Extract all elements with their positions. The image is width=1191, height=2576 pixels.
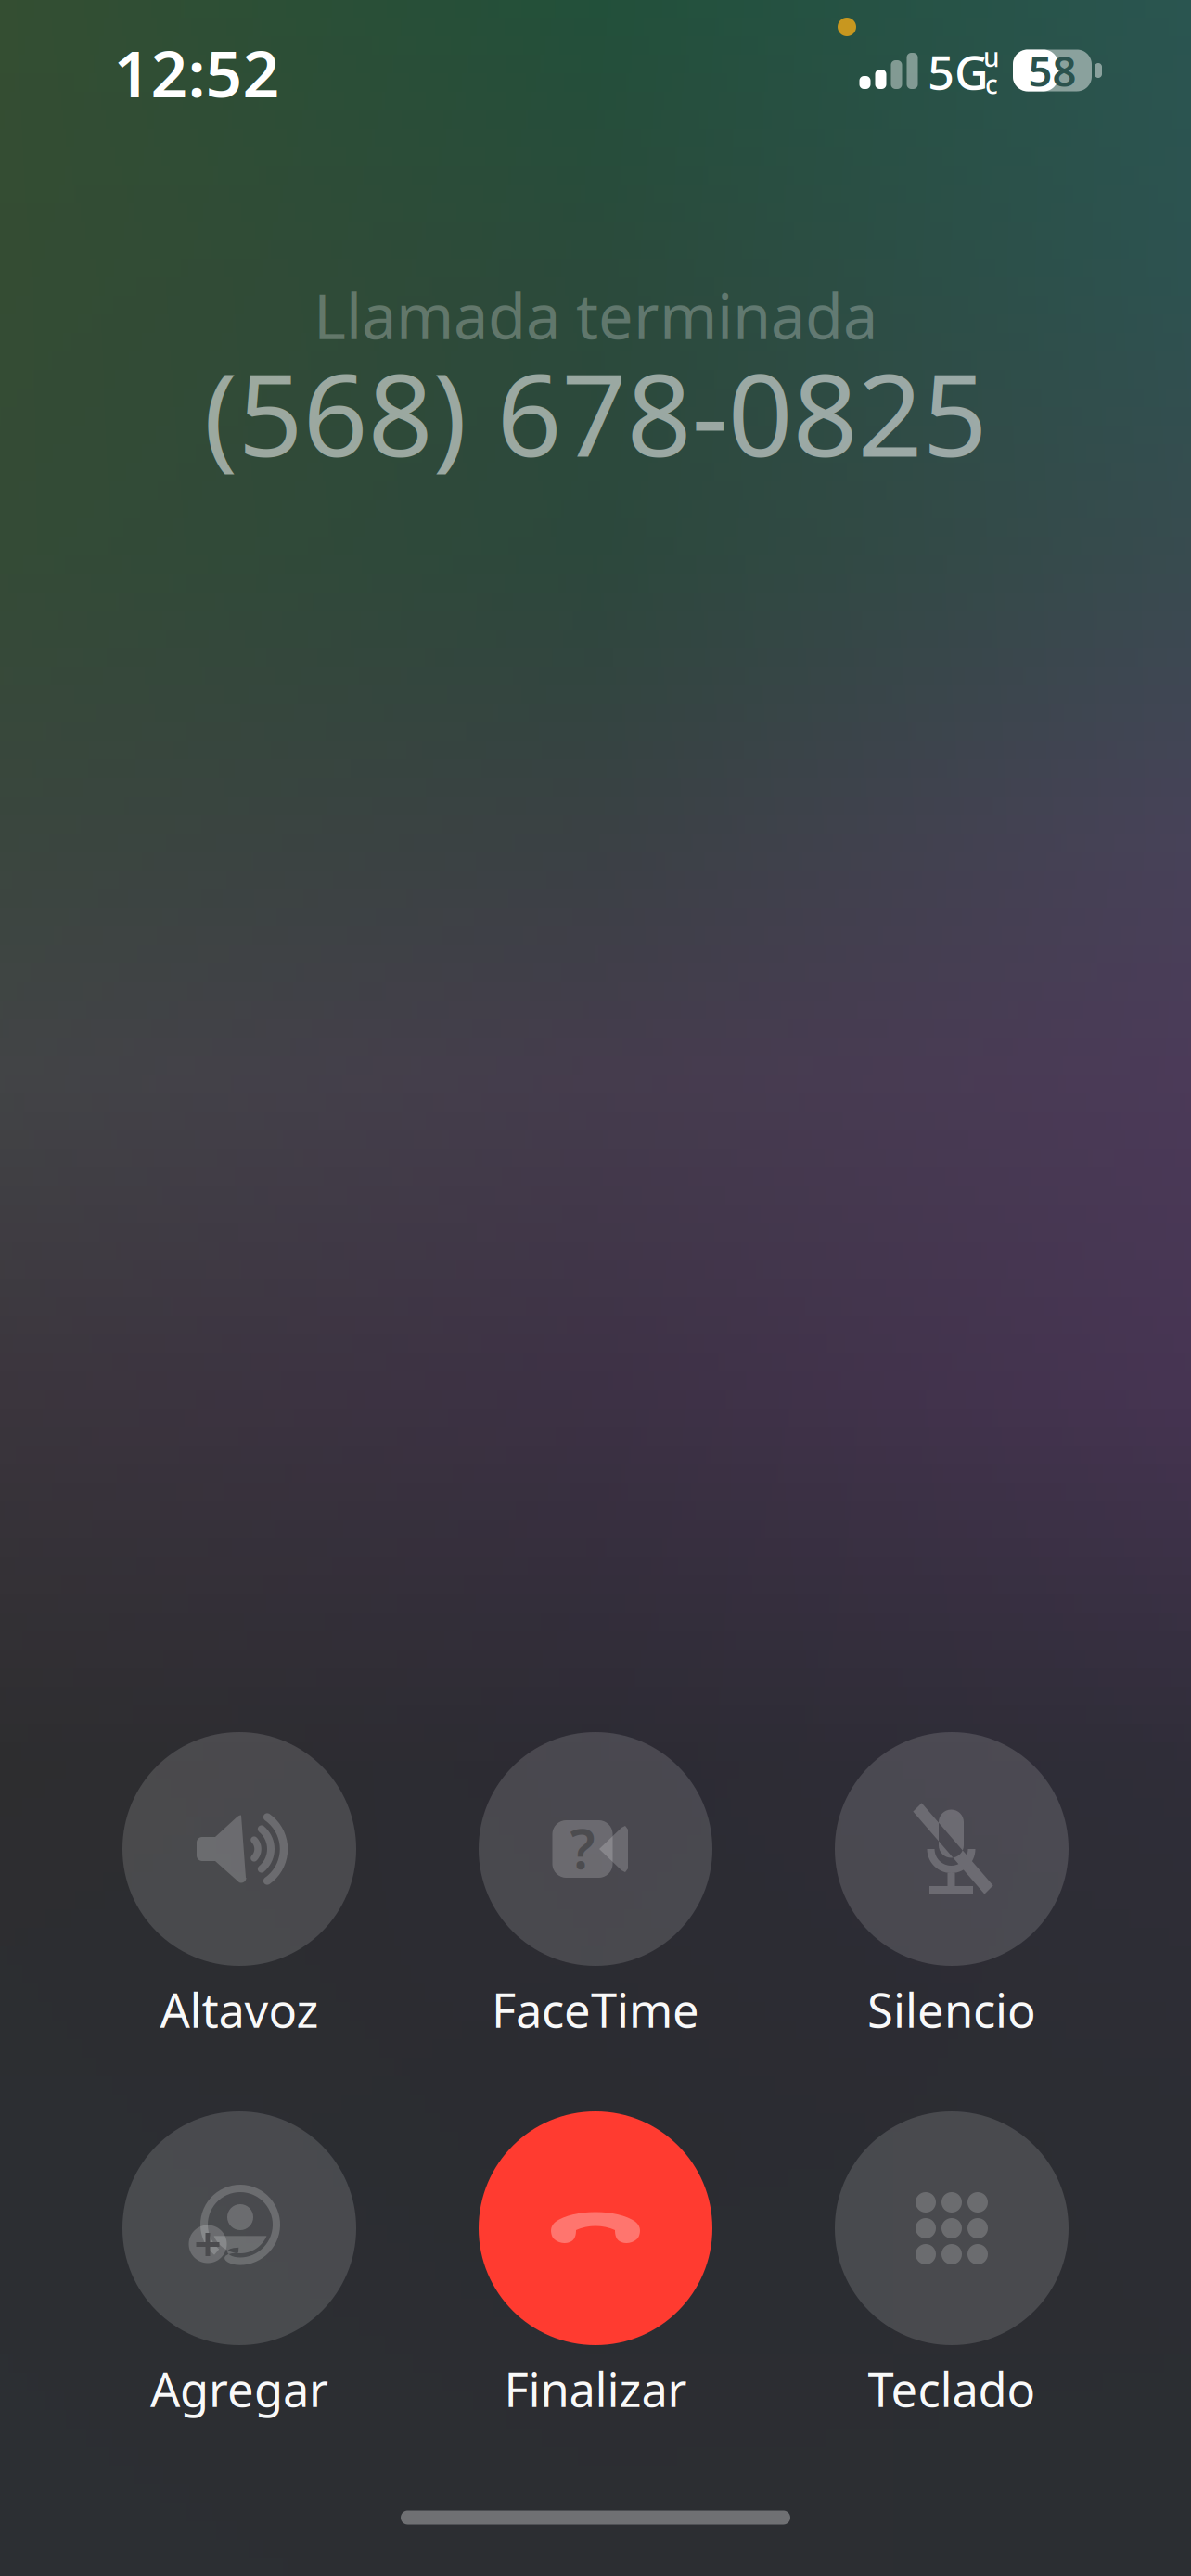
button[interactable]: Finalizar [432, 2111, 759, 2416]
button[interactable]: Teclado [788, 2111, 1115, 2416]
staticText: 12:52 [114, 30, 280, 115]
staticText: Altavoz [160, 1978, 319, 2041]
staticText: Silencio [867, 1978, 1036, 2041]
staticText: FaceTime [492, 1978, 699, 2041]
staticText: Finalizar [504, 2358, 687, 2420]
button[interactable]: ? [432, 1732, 759, 2036]
button[interactable]: Altavoz [76, 1732, 403, 2036]
staticText: Llamada terminada [314, 274, 877, 356]
staticText: u [983, 40, 1000, 74]
staticText: ? [570, 1812, 595, 1884]
staticText: 5G [928, 40, 989, 103]
button[interactable]: Silencio [788, 1732, 1115, 2036]
staticText: Teclado [868, 2358, 1036, 2420]
staticText: c [985, 67, 998, 101]
staticText: 58 [1028, 43, 1076, 98]
staticText: Agregar [150, 2358, 328, 2420]
button[interactable]: Agregar [76, 2111, 403, 2416]
staticText: (568) 678-0825 [204, 337, 987, 488]
